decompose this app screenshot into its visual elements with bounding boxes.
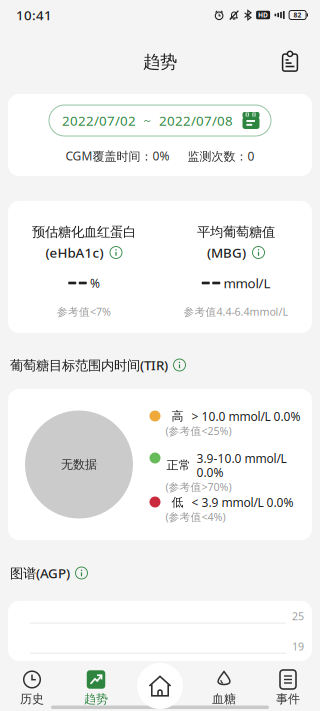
staticText: 历史 — [20, 692, 44, 706]
button[interactable]: 事件 — [256, 661, 320, 711]
staticText: > 10.0 mmol/L 0.0% — [191, 408, 300, 424]
staticText: 2022/07/02 — [62, 112, 136, 129]
staticText: 趋势 — [84, 692, 108, 706]
staticText: 2022/07/08 — [159, 112, 233, 129]
staticText: HD — [258, 11, 268, 19]
staticText: (eHbA1c) — [45, 244, 103, 261]
staticText: ～ — [142, 114, 153, 127]
staticText: 监测次数：0 — [187, 148, 254, 164]
staticText: 19 — [292, 639, 304, 653]
staticText: 25 — [292, 609, 304, 623]
staticText: < 3.9 mmol/L 0.0% — [191, 494, 293, 510]
staticText: 趋势 — [143, 51, 177, 73]
button[interactable]: Report — [268, 40, 312, 84]
staticText: 参考值<7% — [57, 304, 111, 319]
staticText: 预估糖化血红蛋白 — [32, 224, 136, 240]
staticText: 血糖 — [212, 692, 236, 706]
staticText: 3.9-10.0 mmol/L — [196, 450, 286, 466]
staticText: 平均葡萄糖值 — [197, 224, 275, 240]
staticText: 低 — [171, 495, 183, 510]
button[interactable]: 2022/07/02 — [49, 105, 271, 136]
staticText: 事件 — [276, 692, 300, 706]
staticText: 无数据 — [61, 457, 97, 472]
staticText: 正常 — [166, 458, 190, 473]
staticText: mmol/L — [223, 274, 270, 292]
button[interactable]: 血糖 — [192, 661, 256, 711]
staticText: CGM覆盖时间：0% — [65, 148, 169, 164]
staticText: 10:41 — [16, 6, 52, 24]
staticText: 图谱(AGP) — [10, 564, 70, 582]
staticText: % — [90, 275, 100, 291]
staticText: 葡萄糖目标范围内时间(TIR) — [10, 356, 168, 374]
button[interactable]: Home — [135, 661, 185, 711]
staticText: (参考值<25%) — [165, 424, 231, 438]
staticText: 参考值4.4-6.4mmol/L — [183, 304, 288, 319]
staticText: 高 — [171, 409, 183, 424]
staticText: (参考值>70%) — [165, 480, 231, 494]
button[interactable]: 趋势 — [64, 661, 128, 711]
staticText: (MBG) — [207, 244, 246, 261]
staticText: 82 — [294, 11, 302, 19]
button[interactable]: 历史 — [0, 661, 64, 711]
staticText: (参考值<4%) — [165, 510, 225, 524]
staticText: 0.0% — [196, 464, 223, 480]
